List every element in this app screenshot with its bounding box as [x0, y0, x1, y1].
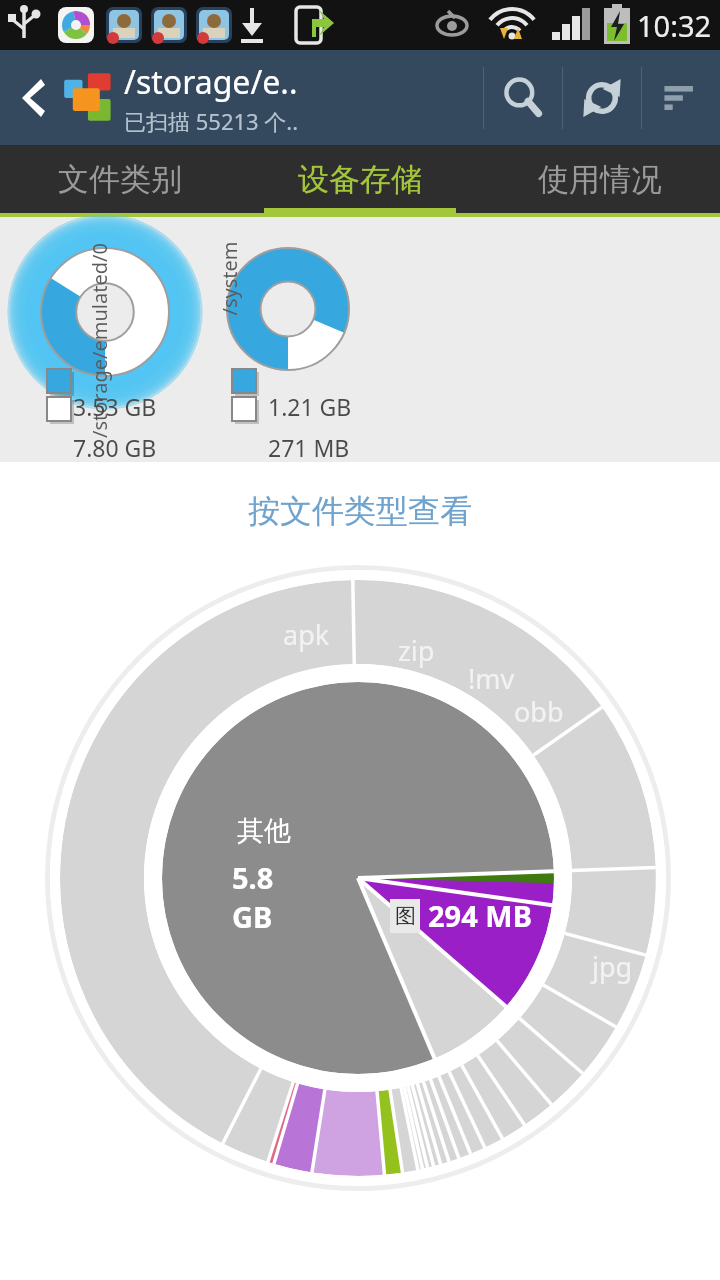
staticText: jpg [592, 948, 633, 985]
staticText: zip [398, 632, 435, 669]
staticText: 使用情况 [538, 160, 662, 199]
staticText: 已扫描 55213 个.. [124, 106, 299, 136]
button[interactable]: 文件类别 [0, 145, 240, 213]
staticText: 文件类别 [58, 160, 182, 199]
button[interactable]: Back [0, 50, 62, 145]
staticText: 图 [395, 903, 416, 929]
button[interactable]: Search [484, 50, 562, 145]
staticText: 10:32 [637, 6, 712, 45]
button[interactable]: 使用情况 [480, 145, 720, 213]
staticText: 7.80 GB [73, 432, 157, 463]
button[interactable]: Refresh [563, 50, 641, 145]
staticText: 按文件类型查看 [248, 491, 472, 531]
staticText: 271 MB [268, 432, 350, 463]
staticText: /system [215, 241, 242, 315]
staticText: /storage/emulated/0 [86, 243, 113, 438]
staticText: 设备存储 [298, 160, 422, 199]
staticText: 5.8 GB [232, 858, 296, 936]
staticText: !mv [468, 660, 515, 697]
staticText: 3.53 GB [73, 391, 157, 422]
staticText: 1.21 GB [268, 391, 352, 422]
staticText: /storage/e.. [124, 60, 298, 104]
button[interactable]: 设备存储 [240, 145, 480, 213]
staticText: obb [514, 693, 564, 730]
staticText: apk [283, 616, 330, 653]
button[interactable]: Sort [642, 50, 720, 145]
staticText: 294 MB [428, 896, 532, 935]
staticText: 其他 [237, 814, 291, 848]
